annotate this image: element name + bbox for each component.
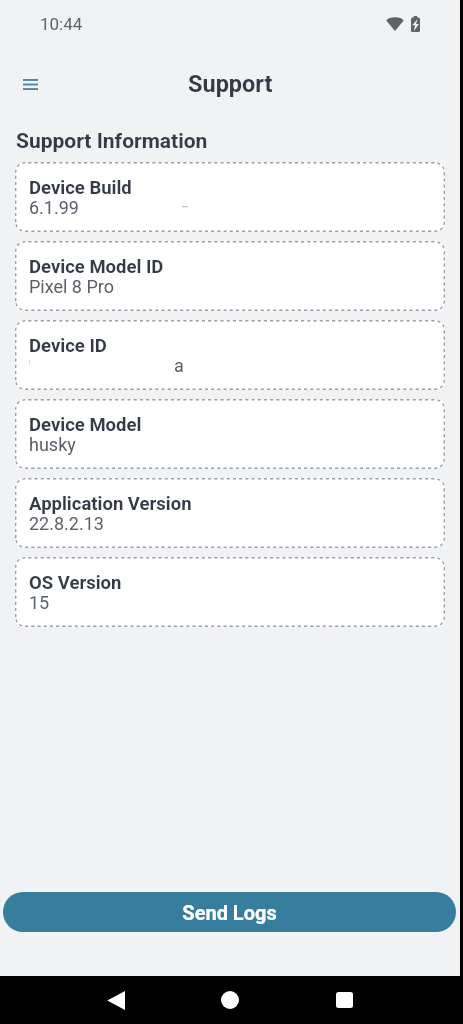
- button[interactable]: OS Version: [15, 557, 445, 627]
- button[interactable]: Home: [206, 976, 254, 1024]
- button[interactable]: Back: [93, 976, 141, 1024]
- button[interactable]: Send Logs: [3, 892, 456, 932]
- staticText: Send Logs: [182, 901, 277, 924]
- staticText: Device ID: [29, 335, 107, 357]
- staticText: OS Version: [29, 572, 122, 594]
- staticText: 15: [29, 592, 50, 613]
- button[interactable]: Device ID: [15, 320, 445, 390]
- button[interactable]: Application Version: [15, 478, 445, 548]
- staticText: Device Model ID: [29, 256, 164, 278]
- button[interactable]: Device Build: [15, 162, 445, 232]
- button[interactable]: Device Model: [15, 399, 445, 469]
- staticText: 22.8.2.13: [29, 513, 104, 534]
- staticText: Device Build: [29, 177, 132, 199]
- staticText: Device Model: [29, 414, 142, 436]
- staticText: a: [174, 355, 184, 376]
- staticText: 6.1.99: [29, 197, 79, 218]
- button[interactable]: Device Model ID: [15, 241, 445, 311]
- staticText: husky: [29, 434, 76, 455]
- button[interactable]: Recent apps: [320, 976, 368, 1024]
- staticText: Support: [188, 70, 273, 98]
- staticText: Support Information: [16, 129, 208, 154]
- staticText: Pixel 8 Pro: [29, 276, 114, 297]
- staticText: 10:44: [40, 14, 83, 34]
- button[interactable]: Open navigation menu: [8, 62, 52, 106]
- staticText: Application Version: [29, 493, 192, 515]
